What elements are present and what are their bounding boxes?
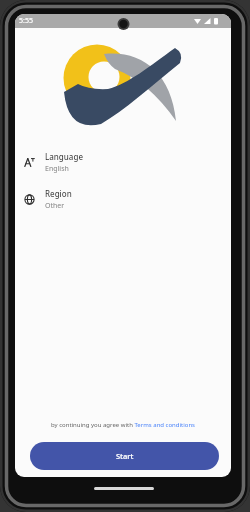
button[interactable]: Region bbox=[24, 188, 164, 211]
staticText: Language bbox=[45, 151, 83, 162]
staticText: 5:55 bbox=[19, 16, 33, 26]
button[interactable]: Start bbox=[30, 442, 219, 470]
staticText: Start bbox=[116, 451, 134, 461]
staticText: English bbox=[45, 164, 69, 174]
staticText: Region bbox=[45, 188, 72, 199]
button[interactable]: Language bbox=[24, 151, 164, 174]
staticText: Other bbox=[45, 201, 65, 211]
button[interactable]: by continuing you agree with Terms and c… bbox=[51, 421, 195, 429]
